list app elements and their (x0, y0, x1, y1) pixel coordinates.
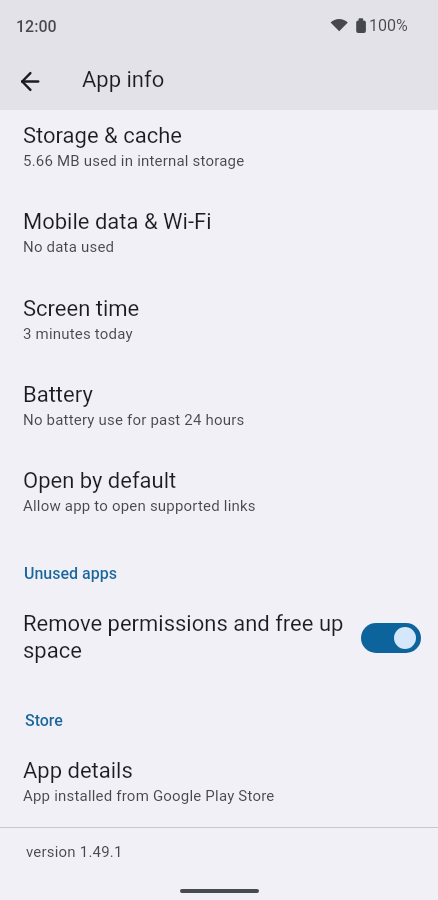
staticText: Storage & cache (23, 123, 182, 149)
staticText: No data used (23, 238, 115, 256)
staticText: No battery use for past 24 hours (23, 411, 245, 429)
staticText: App info (82, 67, 165, 93)
staticText: Open by default (23, 468, 177, 494)
staticText: App installed from Google Play Store (23, 787, 275, 805)
staticText: 3 minutes today (23, 325, 133, 343)
staticText: App details (23, 758, 133, 784)
staticText: 100% (369, 16, 408, 35)
staticText: version 1.49.1 (26, 843, 123, 861)
staticText: Mobile data & Wi-Fi (23, 209, 212, 235)
staticText: Allow app to open supported links (23, 497, 256, 515)
staticText: Battery (23, 382, 93, 408)
staticText: space (23, 638, 82, 664)
staticText: 5.66 MB used in internal storage (23, 152, 245, 170)
staticText: Remove permissions and free up (23, 611, 344, 637)
staticText: Unused apps (24, 564, 118, 583)
staticText: 12:00 (16, 17, 57, 36)
staticText: Screen time (23, 296, 140, 322)
staticText: Store (25, 711, 63, 730)
